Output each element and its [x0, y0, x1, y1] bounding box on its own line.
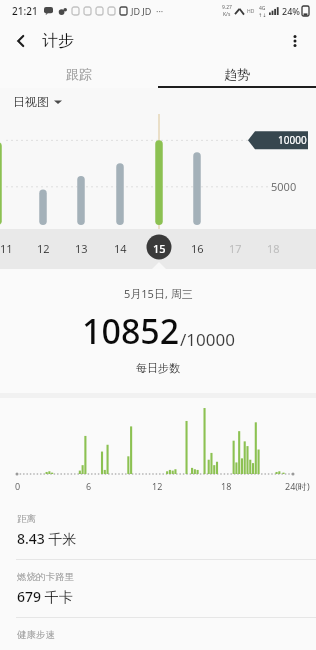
staticText: 8.43 千米 [17, 529, 77, 548]
staticText: 679 千卡 [17, 587, 73, 606]
button[interactable]: 燃烧的卡路里 [0, 559, 316, 617]
staticText: HD [247, 8, 255, 15]
staticText: 17 [229, 241, 242, 256]
staticText: 10852 [82, 308, 180, 354]
staticText: 日视图 [13, 94, 49, 109]
staticText: 5月15日, 周三 [124, 286, 193, 301]
staticText: 趋势 [224, 66, 250, 82]
staticText: 24% [282, 5, 300, 17]
staticText: 燃烧的卡路里 [17, 571, 74, 583]
staticText: ↑↓ [258, 12, 267, 18]
staticText: 9.27 [222, 4, 232, 11]
button[interactable]: 日视图 [13, 94, 62, 109]
staticText: 每日步数 [136, 361, 180, 375]
button[interactable]: 健康步速 [0, 617, 316, 650]
staticText: 健康步速 [17, 629, 55, 639]
staticText: 18 [267, 241, 280, 256]
staticText: 13 [75, 241, 88, 256]
staticText: 跟踪 [66, 66, 92, 82]
button[interactable]: 趋势 [158, 60, 316, 88]
staticText: 15 [153, 241, 166, 256]
button[interactable]: Back [3, 23, 39, 59]
staticText: 21:21 [12, 4, 38, 18]
staticText: 4G [259, 5, 266, 12]
staticText: ··· [156, 5, 164, 17]
staticText: 24(时) [285, 480, 310, 492]
staticText: 18 [221, 480, 232, 492]
staticText: K/s [223, 11, 231, 18]
staticText: 10000 [278, 133, 307, 147]
staticText: 计步 [42, 31, 74, 51]
staticText: 14 [114, 241, 127, 256]
button[interactable]: More options [277, 23, 313, 59]
staticText: /10000 [180, 328, 235, 351]
staticText: 5000 [271, 179, 297, 194]
staticText: 16 [191, 241, 204, 256]
staticText: 12 [37, 241, 50, 256]
staticText: JD JD [131, 5, 152, 17]
staticText: 距离 [17, 513, 36, 525]
staticText: 11 [0, 241, 13, 256]
button[interactable]: 距离 [0, 502, 316, 559]
staticText: 12 [152, 480, 163, 492]
staticText: 6 [86, 480, 92, 492]
button[interactable]: 跟踪 [0, 60, 158, 88]
staticText: 0 [15, 480, 21, 492]
